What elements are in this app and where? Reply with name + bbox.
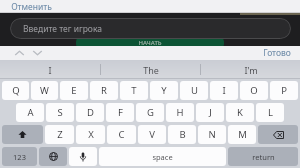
button[interactable]: H: [166, 103, 194, 122]
button[interactable]: K: [226, 103, 254, 122]
button[interactable]: X: [76, 125, 105, 144]
button[interactable]: space: [99, 147, 226, 166]
staticText: X: [88, 128, 94, 141]
staticText: L: [268, 106, 273, 119]
staticText: N: [208, 128, 216, 141]
button[interactable]: W: [31, 81, 58, 100]
staticText: C: [118, 128, 125, 141]
button[interactable]: M: [228, 125, 256, 144]
staticText: W: [40, 84, 49, 97]
staticText: H: [176, 106, 184, 119]
staticText: D: [87, 106, 94, 119]
staticText: return: [252, 152, 275, 162]
staticText: Z: [57, 128, 63, 141]
button[interactable]: I: [210, 81, 238, 100]
button[interactable]: A: [16, 103, 44, 122]
button[interactable]: Y: [150, 81, 178, 100]
button[interactable]: N: [198, 125, 226, 144]
button[interactable]: НАЧАТЬ: [76, 36, 224, 50]
staticText: Y: [161, 84, 167, 97]
staticText: A: [27, 106, 34, 119]
staticText: I: [48, 64, 52, 76]
staticText: I'm: [244, 64, 258, 76]
button[interactable]: P: [270, 81, 298, 100]
staticText: O: [250, 84, 258, 97]
button[interactable]: Dictate: [69, 147, 97, 166]
staticText: U: [191, 84, 198, 97]
button[interactable]: F: [106, 103, 134, 122]
button[interactable]: Previous field: [10, 46, 28, 60]
staticText: Готово: [263, 47, 291, 59]
button[interactable]: U: [180, 81, 208, 100]
staticText: K: [237, 106, 243, 119]
button[interactable]: Отменить: [0, 0, 58, 13]
button[interactable]: Backspace: [258, 125, 298, 144]
button[interactable]: Z: [45, 125, 74, 144]
button[interactable]: G: [136, 103, 164, 122]
button[interactable]: T: [120, 81, 148, 100]
staticText: V: [149, 128, 155, 141]
staticText: 123: [13, 152, 26, 162]
button[interactable]: Switch keyboard: [39, 147, 67, 166]
button[interactable]: 123: [2, 147, 37, 166]
staticText: J: [209, 106, 212, 119]
staticText: G: [147, 106, 154, 119]
button[interactable]: B: [168, 125, 196, 144]
staticText: M: [238, 128, 247, 141]
staticText: space: [152, 152, 173, 162]
staticText: Q: [12, 84, 20, 97]
button[interactable]: Shift: [2, 125, 43, 144]
button[interactable]: C: [107, 125, 136, 144]
staticText: R: [101, 84, 107, 97]
staticText: P: [281, 84, 287, 97]
staticText: F: [118, 106, 123, 119]
button[interactable]: I: [0, 60, 100, 79]
button[interactable]: D: [76, 103, 104, 122]
button[interactable]: L: [256, 103, 284, 122]
button[interactable]: V: [138, 125, 166, 144]
staticText: Введите тег игрока: [23, 23, 102, 35]
button[interactable]: I'm: [201, 60, 300, 79]
staticText: Отменить: [11, 1, 52, 13]
button[interactable]: J: [196, 103, 224, 122]
staticText: E: [71, 84, 77, 97]
button[interactable]: return: [228, 147, 298, 166]
staticText: I: [222, 84, 226, 97]
button[interactable]: O: [240, 81, 268, 100]
button[interactable]: R: [90, 81, 118, 100]
staticText: B: [179, 128, 186, 141]
staticText: The: [143, 64, 159, 76]
button[interactable]: E: [60, 81, 88, 100]
button[interactable]: Next field: [28, 46, 46, 60]
staticText: S: [57, 106, 63, 119]
button[interactable]: Q: [2, 81, 29, 100]
staticText: НАЧАТЬ: [138, 39, 162, 47]
button[interactable]: S: [46, 103, 74, 122]
button[interactable]: The: [101, 60, 200, 79]
button[interactable]: Готово: [254, 46, 300, 60]
staticText: T: [131, 84, 137, 97]
button[interactable]: Введите тег игрока: [10, 18, 291, 39]
